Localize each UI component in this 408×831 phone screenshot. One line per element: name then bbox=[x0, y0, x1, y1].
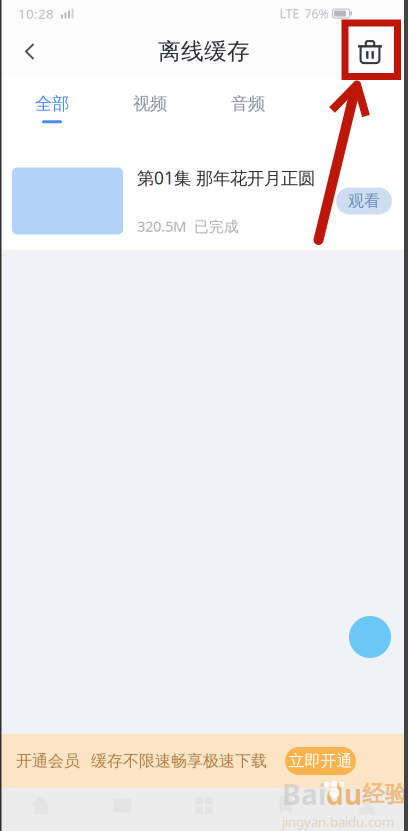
staticText: Bai bbox=[282, 776, 326, 813]
button[interactable]: 全部 bbox=[3, 76, 101, 152]
staticText: 320.5M 已完成 bbox=[137, 216, 239, 236]
staticText: 音频 bbox=[231, 93, 265, 114]
button[interactable]: 首页 bbox=[0, 788, 82, 831]
staticText: 经验 bbox=[362, 780, 408, 808]
button[interactable]: 音频 bbox=[199, 76, 297, 152]
staticText: 开通会员 bbox=[16, 751, 80, 771]
button[interactable]: 会员 bbox=[245, 788, 326, 831]
button[interactable]: Back bbox=[8, 27, 52, 76]
staticText: 立即开通 bbox=[288, 751, 352, 771]
staticText: 缓存不限速畅享极速下载 bbox=[91, 751, 267, 771]
button[interactable]: 第01集 那年花开月正圆 bbox=[0, 152, 408, 250]
button[interactable]: Delete all bbox=[348, 27, 392, 76]
button[interactable]: Add download bbox=[349, 616, 391, 658]
button[interactable]: 我的 bbox=[326, 788, 408, 831]
staticText: du bbox=[326, 776, 362, 813]
staticText: LTE bbox=[279, 5, 299, 21]
button[interactable]: 视频 bbox=[101, 76, 199, 152]
button[interactable]: 立即开通 bbox=[285, 747, 356, 775]
staticText: 76% bbox=[304, 5, 328, 21]
staticText: 视频 bbox=[133, 93, 167, 114]
staticText: jingyan.baidu.com bbox=[282, 813, 394, 830]
staticText: 全部 bbox=[35, 93, 69, 114]
staticText: 离线缓存 bbox=[158, 38, 250, 65]
staticText: 第01集 那年花开月正圆 bbox=[137, 166, 315, 189]
staticText: 10:28 bbox=[18, 5, 54, 22]
staticText: 观看 bbox=[348, 191, 380, 211]
